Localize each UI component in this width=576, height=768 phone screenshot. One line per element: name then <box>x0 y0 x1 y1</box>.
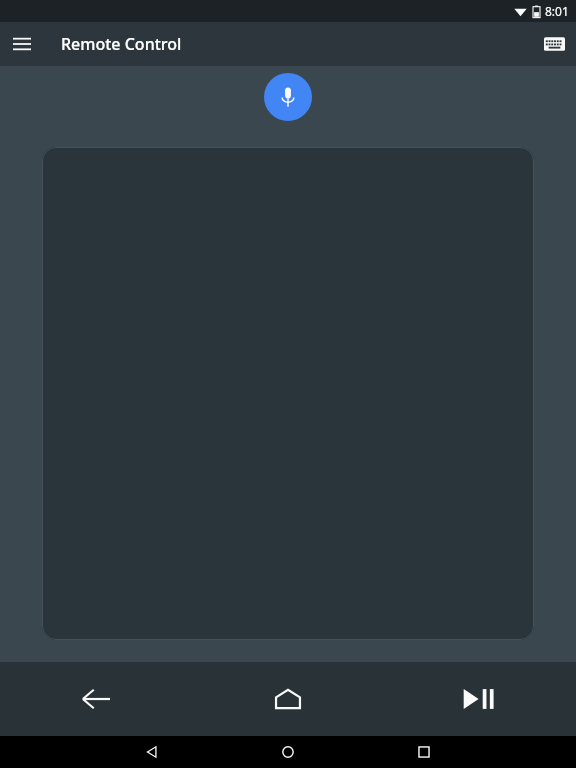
button[interactable]: Voice input <box>264 73 312 121</box>
staticText: 8:01 <box>545 3 569 19</box>
button[interactable]: Navigation menu <box>0 22 44 66</box>
button[interactable]: Keyboard <box>532 22 576 66</box>
button[interactable]: Play or pause <box>384 662 576 736</box>
button[interactable]: Back <box>0 662 192 736</box>
button[interactable]: Recent apps <box>356 736 492 768</box>
button[interactable]: Home <box>192 662 384 736</box>
button[interactable]: Home <box>220 736 356 768</box>
staticText: Remote Control <box>61 33 182 55</box>
button[interactable]: Back <box>84 736 220 768</box>
